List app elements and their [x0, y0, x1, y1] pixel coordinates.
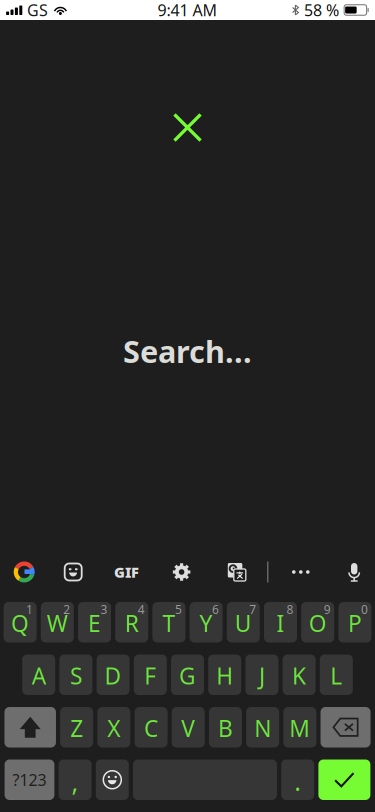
button[interactable]: L	[320, 654, 353, 695]
button[interactable]: Close	[164, 104, 211, 151]
button[interactable]: U	[227, 602, 260, 642]
button[interactable]: Z	[60, 707, 93, 747]
staticText: K	[292, 661, 306, 691]
button[interactable]: Backspace	[320, 707, 370, 747]
staticText: G	[179, 661, 196, 691]
button[interactable]: B	[209, 707, 242, 747]
staticText: 9	[324, 601, 331, 617]
button[interactable]: More options	[279, 550, 323, 594]
button[interactable]: W	[41, 602, 74, 642]
staticText: 4	[138, 601, 145, 617]
staticText: T	[162, 608, 175, 638]
staticText: B	[218, 713, 233, 743]
staticText: V	[181, 713, 195, 743]
button[interactable]: Voice input	[332, 550, 375, 594]
staticText: Y	[200, 608, 213, 638]
staticText: 8	[286, 601, 293, 617]
button[interactable]: GIF	[104, 550, 148, 594]
button[interactable]: Period	[281, 759, 314, 800]
button[interactable]: Enter	[318, 759, 370, 800]
staticText: Search...	[123, 331, 252, 371]
button[interactable]: Google Search	[2, 550, 46, 594]
button[interactable]: T	[152, 602, 185, 642]
button[interactable]: F	[134, 654, 167, 695]
staticText: 58 %	[304, 0, 339, 21]
staticText: 3	[100, 601, 107, 617]
button[interactable]: N	[246, 707, 279, 747]
button[interactable]: Translate	[215, 550, 259, 594]
staticText: R	[125, 608, 139, 638]
button[interactable]: D	[97, 654, 130, 695]
staticText: Z	[70, 713, 83, 743]
staticText: GS	[27, 0, 48, 21]
staticText: 5	[175, 601, 182, 617]
staticText: 6	[212, 601, 219, 617]
staticText: ?123	[12, 769, 46, 790]
staticText: M	[289, 713, 310, 743]
staticText: H	[216, 661, 233, 691]
button[interactable]: M	[283, 707, 316, 747]
staticText: GIF	[114, 562, 139, 582]
staticText: W	[47, 608, 68, 638]
staticText: C	[144, 713, 158, 743]
staticText: F	[144, 661, 156, 691]
staticText: P	[348, 608, 362, 638]
staticText: O	[309, 608, 327, 638]
button[interactable]: P	[338, 602, 371, 642]
staticText: ,	[72, 765, 79, 799]
staticText: N	[254, 713, 271, 743]
button[interactable]: Stickers	[51, 550, 95, 594]
button[interactable]: R	[115, 602, 148, 642]
staticText: J	[259, 661, 265, 691]
button[interactable]: Emoji	[96, 759, 129, 800]
staticText: .	[294, 764, 301, 798]
staticText: 7	[249, 601, 256, 617]
button[interactable]: C	[135, 707, 168, 747]
button[interactable]: I	[264, 602, 297, 642]
button[interactable]: Shift	[4, 707, 56, 747]
button[interactable]: J	[245, 654, 278, 695]
staticText: 1	[26, 601, 33, 617]
button[interactable]: Comma	[59, 759, 92, 800]
staticText: 9:41 AM	[157, 0, 217, 21]
staticText: Q	[11, 608, 29, 638]
button[interactable]: Settings	[160, 550, 204, 594]
button[interactable]: K	[283, 654, 316, 695]
staticText: 0	[361, 601, 368, 617]
button[interactable]: Symbols	[5, 759, 54, 800]
button[interactable]: Q	[4, 602, 37, 642]
staticText: X	[107, 713, 120, 743]
button[interactable]: S	[59, 654, 92, 695]
button[interactable]: V	[172, 707, 205, 747]
button[interactable]: E	[78, 602, 111, 642]
staticText: U	[235, 608, 252, 638]
button[interactable]: H	[208, 654, 241, 695]
button[interactable]: O	[301, 602, 334, 642]
staticText: 2	[63, 601, 70, 617]
staticText: D	[105, 661, 122, 691]
button[interactable]: A	[22, 654, 55, 695]
staticText: L	[330, 661, 342, 691]
staticText: I	[276, 608, 284, 638]
staticText: A	[32, 661, 46, 691]
staticText: S	[70, 661, 82, 691]
button[interactable]: X	[97, 707, 130, 747]
button[interactable]: Y	[190, 602, 223, 642]
button[interactable]: G	[171, 654, 204, 695]
staticText: E	[88, 608, 101, 638]
